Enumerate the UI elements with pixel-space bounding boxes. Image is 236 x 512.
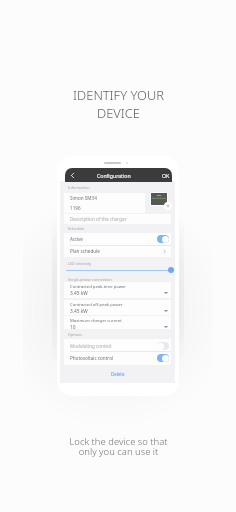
- staticText: Modulating control: [70, 343, 112, 349]
- button[interactable]: Simon SM34: [70, 193, 171, 203]
- staticText: Active: [70, 236, 83, 242]
- staticText: Configuration: [97, 172, 131, 179]
- staticText: 1196: [70, 205, 81, 211]
- button[interactable]: Active: [70, 233, 169, 245]
- button[interactable]: 1196: [70, 203, 171, 213]
- staticText: OK: [162, 172, 170, 179]
- button[interactable]: Plan schedule: [70, 245, 167, 257]
- staticText: Contracted off-peak power: [70, 302, 123, 308]
- button[interactable]: Photovoltaic control: [70, 351, 169, 364]
- button[interactable]: OK: [159, 168, 172, 182]
- staticText: IDENTIFY YOUR DEVICE: [73, 86, 164, 121]
- button[interactable]: Device photo: [151, 193, 167, 205]
- staticText: Information: [68, 185, 90, 190]
- staticText: Simon SM34: [70, 195, 97, 201]
- button[interactable]: Delete: [64, 370, 171, 377]
- button[interactable]: Maximum charger current: [64, 316, 171, 329]
- staticText: Lock the device so that only you can use…: [69, 435, 168, 458]
- button[interactable]: Add photo: [164, 202, 172, 210]
- button[interactable]: Contracted peak-time power: [64, 282, 171, 298]
- staticText: 3.45 kW: [70, 290, 88, 297]
- button[interactable]: Modulating control: [70, 339, 169, 352]
- staticText: 10: [70, 324, 76, 331]
- staticText: Maximum charger current: [70, 318, 122, 324]
- button[interactable]: Contracted off-peak power: [64, 300, 171, 315]
- button[interactable]: Back: [66, 168, 78, 182]
- staticText: Photovoltaic control: [70, 355, 114, 361]
- staticText: Description of the charger: [70, 216, 127, 222]
- staticText: Schedule: [68, 226, 85, 231]
- staticText: Single-phase connection: [68, 277, 112, 282]
- staticText: LED intensity: [68, 261, 92, 266]
- staticText: Delete: [111, 371, 125, 377]
- staticText: Plan schedule: [70, 248, 100, 254]
- button[interactable]: LED intensity: [66, 266, 171, 274]
- button[interactable]: Description of the charger: [70, 214, 171, 224]
- staticText: Contracted peak-time power: [70, 284, 127, 290]
- staticText: Options: [68, 332, 83, 337]
- staticText: 3.45 kW: [70, 308, 88, 315]
